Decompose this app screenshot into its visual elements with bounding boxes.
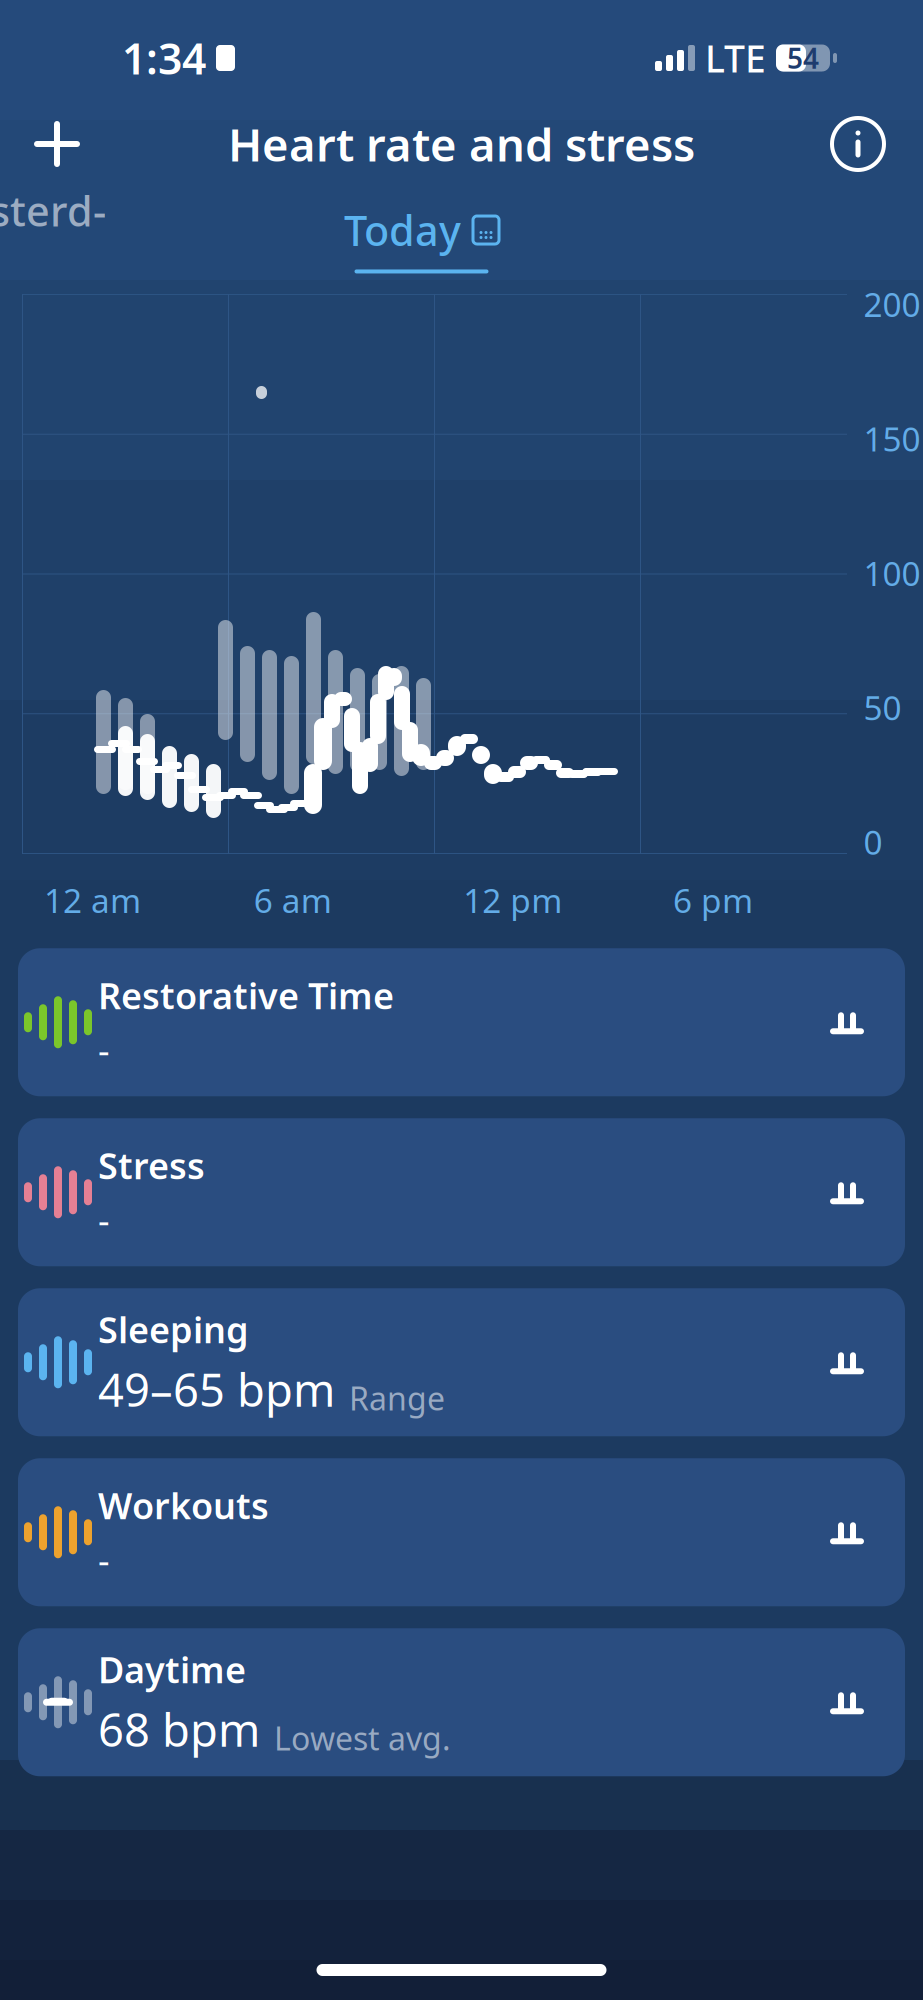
staticText: 0 — [863, 820, 882, 864]
staticText: Lowest avg. — [274, 1717, 451, 1759]
button[interactable]: Restorative Time — [18, 948, 905, 1096]
button[interactable]: Stress — [18, 1118, 905, 1266]
staticText: - — [98, 1195, 110, 1243]
staticText: 12 pm — [463, 878, 562, 922]
button[interactable]: Sleeping — [18, 1288, 905, 1436]
staticText: 49–65 bpm — [98, 1359, 335, 1419]
button[interactable]: Today — [344, 203, 499, 273]
button[interactable]: Workouts — [18, 1458, 905, 1606]
staticText: 200 — [863, 282, 920, 326]
staticText: 54 — [787, 39, 819, 77]
staticText: Stress — [98, 1141, 205, 1189]
staticText: 150 — [863, 416, 920, 461]
button[interactable]: Daytime — [18, 1628, 905, 1776]
staticText: - — [98, 1535, 110, 1583]
staticText: LTE — [705, 33, 766, 83]
button[interactable]: Information — [823, 109, 893, 179]
staticText: Today — [344, 203, 461, 257]
staticText: Restorative Time — [98, 971, 394, 1019]
staticText: Heart rate and stress — [228, 114, 695, 174]
button[interactable]: Yesterday — [24, 183, 124, 293]
staticText: 6 am — [254, 878, 332, 922]
staticText: - — [98, 1025, 110, 1073]
staticText: Workouts — [98, 1481, 269, 1529]
staticText: 1:34 — [122, 30, 206, 86]
staticText: Range — [349, 1377, 445, 1419]
button[interactable]: Close — [22, 109, 92, 179]
staticText: Yesterday — [0, 183, 106, 293]
staticText: Daytime — [98, 1645, 246, 1693]
staticText: Sleeping — [98, 1305, 249, 1353]
staticText: 6 pm — [673, 878, 753, 922]
staticText: 12 am — [44, 878, 141, 922]
staticText: 50 — [863, 685, 901, 730]
staticText: 68 bpm — [98, 1699, 260, 1759]
staticText: 100 — [863, 551, 920, 595]
